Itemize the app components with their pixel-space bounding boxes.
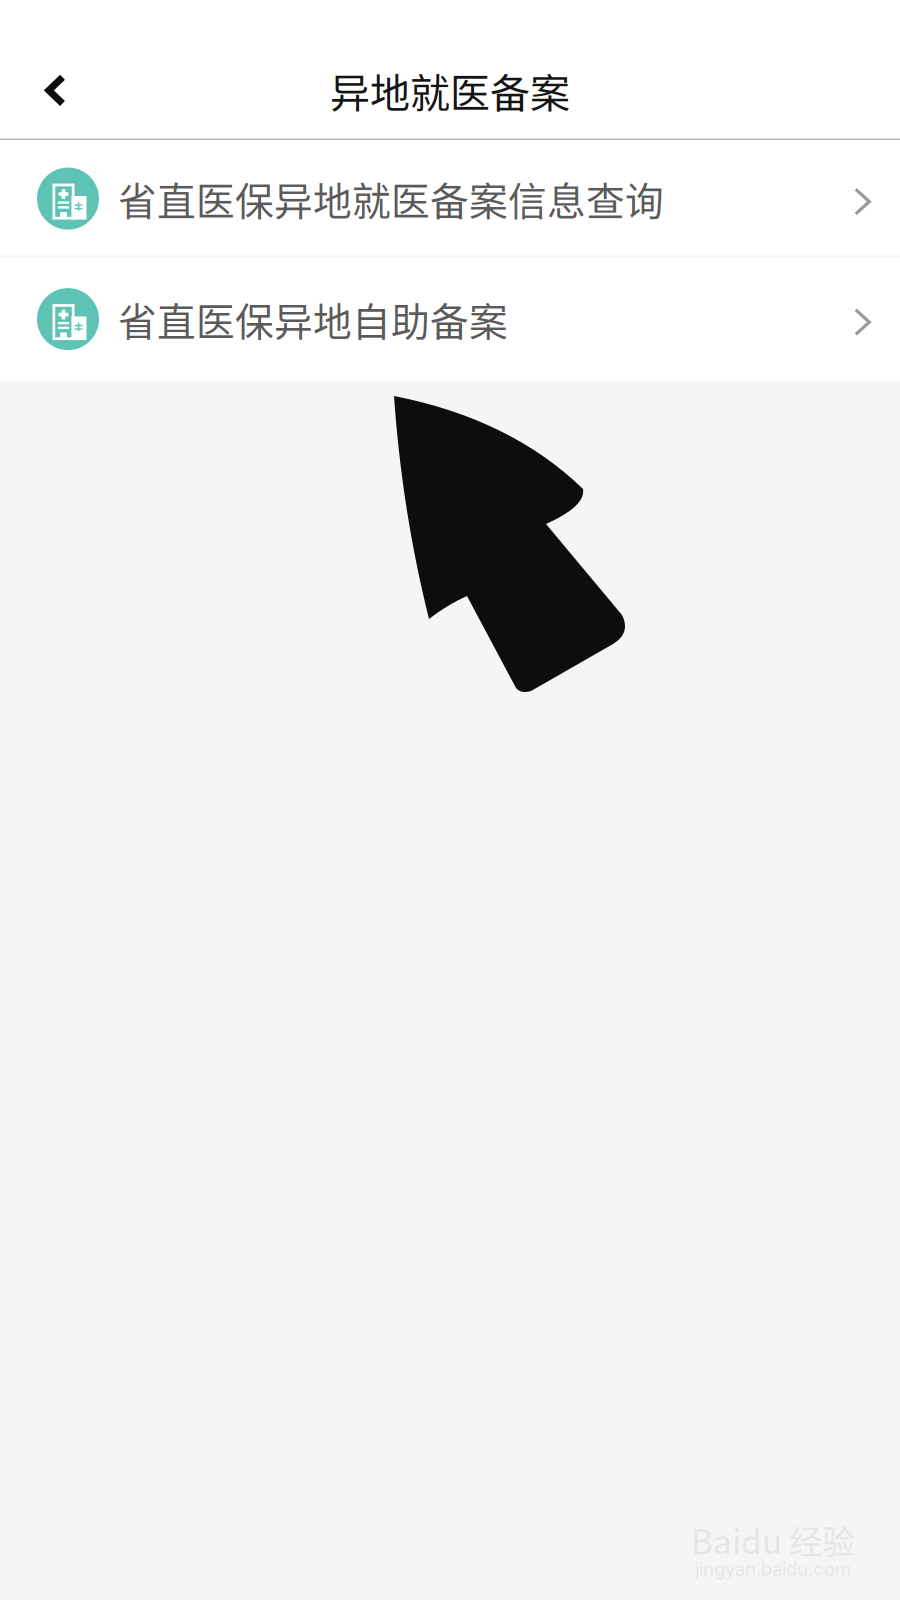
staticText: jingyan.baidu.com [695,1558,851,1580]
staticText: Baidu 经验 [691,1515,855,1564]
staticText: 省直医保异地就医备案信息查询 [118,171,664,227]
button[interactable]: 省直医保异地自助备案 [0,257,900,381]
button[interactable]: Back [0,45,94,135]
staticText: 异地就医备案 [330,61,570,119]
staticText: 省直医保异地自助备案 [118,291,508,347]
button[interactable]: 省直医保异地就医备案信息查询 [0,140,900,257]
